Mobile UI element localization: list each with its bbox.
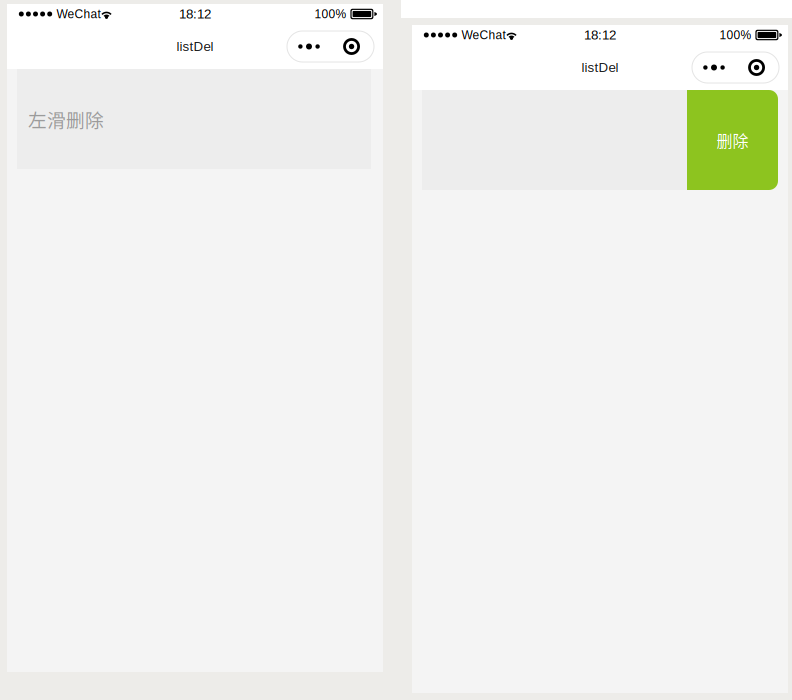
staticText: 删除 bbox=[716, 128, 748, 152]
staticText: 18:12 bbox=[179, 7, 211, 21]
button[interactable]: 删除 bbox=[687, 90, 778, 190]
staticText: 18:12 bbox=[584, 28, 616, 42]
staticText: listDel bbox=[581, 60, 618, 75]
button[interactable]: More options bbox=[287, 31, 374, 62]
staticText: 100% bbox=[719, 28, 751, 42]
button[interactable]: 左滑删除 bbox=[17, 69, 371, 169]
button[interactable]: More options bbox=[692, 52, 779, 83]
staticText: WeChat bbox=[461, 28, 505, 42]
staticText: listDel bbox=[176, 39, 213, 54]
staticText: WeChat bbox=[56, 7, 100, 21]
staticText: 100% bbox=[314, 7, 346, 21]
staticText: 左滑删除 bbox=[28, 105, 104, 132]
